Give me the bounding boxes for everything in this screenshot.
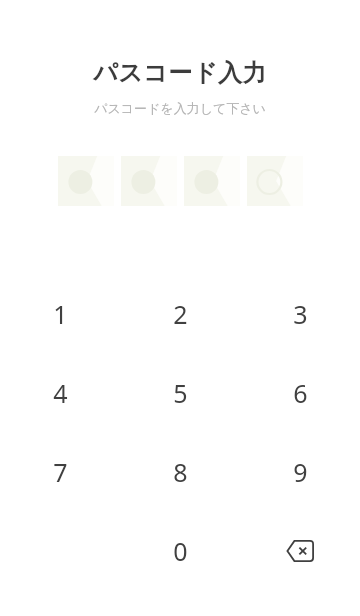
button[interactable]: 5 <box>120 353 240 432</box>
staticText: パスコード入力 <box>93 58 267 88</box>
button[interactable]: Backspace <box>240 511 360 590</box>
staticText: 1 <box>53 297 68 331</box>
button[interactable]: 3 <box>240 274 360 353</box>
staticText: 2 <box>173 297 188 331</box>
button[interactable]: 9 <box>240 432 360 511</box>
staticText: パスコードを入力して下さい <box>94 100 266 116</box>
button[interactable]: 6 <box>240 353 360 432</box>
staticText: 7 <box>53 455 68 489</box>
button[interactable]: 4 <box>0 353 120 432</box>
staticText: 6 <box>293 376 308 410</box>
staticText: 8 <box>173 455 188 489</box>
button[interactable]: 2 <box>120 274 240 353</box>
button[interactable]: 0 <box>120 511 240 590</box>
staticText: 4 <box>53 376 68 410</box>
button[interactable]: 1 <box>0 274 120 353</box>
staticText: 3 <box>293 297 308 331</box>
button[interactable]: 7 <box>0 432 120 511</box>
staticText: 9 <box>293 455 308 489</box>
staticText: 0 <box>173 534 188 568</box>
button[interactable]: 8 <box>120 432 240 511</box>
staticText: 5 <box>173 376 188 410</box>
